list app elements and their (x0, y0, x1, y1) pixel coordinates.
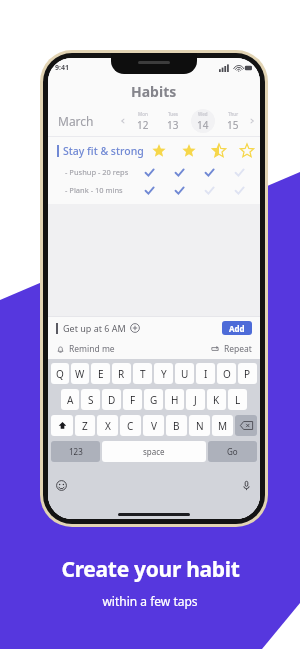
button[interactable]: Tues (158, 108, 188, 134)
staticText: W (75, 367, 85, 381)
button[interactable]: D (102, 389, 121, 410)
staticText: F (130, 393, 136, 407)
staticText: V (151, 419, 157, 433)
staticText: C (127, 419, 134, 433)
button[interactable]: Toggle completion (164, 182, 194, 198)
staticText: 123 (69, 446, 83, 457)
staticText: space (143, 446, 165, 457)
button[interactable]: R (112, 363, 131, 384)
staticText: H (171, 393, 179, 407)
button[interactable]: Y (154, 363, 173, 384)
button[interactable]: I (196, 363, 215, 384)
staticText: 12 (137, 118, 149, 132)
button[interactable]: Toggle completion (224, 182, 254, 198)
staticText: Add (229, 323, 245, 334)
button[interactable]: F (123, 389, 142, 410)
staticText: 9:41 (55, 63, 69, 73)
button[interactable]: K (207, 389, 226, 410)
button[interactable]: E (91, 363, 110, 384)
button[interactable]: B (166, 415, 187, 436)
staticText: M (218, 419, 228, 433)
staticText: K (213, 393, 220, 407)
staticText: P (244, 367, 251, 381)
staticText: - Plank - 10 mins (65, 185, 123, 195)
button[interactable]: Rating star (144, 141, 174, 161)
button[interactable]: Repeat (210, 343, 252, 355)
button[interactable]: Q (51, 363, 69, 384)
button[interactable]: Next week (248, 117, 256, 125)
button[interactable]: Rating star (234, 141, 260, 161)
button[interactable]: C (120, 415, 141, 436)
button[interactable]: Previous week (119, 117, 127, 125)
button[interactable]: space (102, 441, 206, 462)
button[interactable]: V (143, 415, 164, 436)
staticText: J (194, 393, 197, 407)
button[interactable]: Shift (51, 415, 73, 436)
staticText: T (140, 367, 146, 381)
staticText: Go (227, 446, 238, 457)
staticText: Q (56, 367, 64, 381)
button[interactable]: P (238, 363, 257, 384)
staticText: - Pushup - 20 reps (65, 167, 129, 177)
staticText: Get up at 6 AM (63, 322, 126, 334)
button[interactable]: - Plank - 10 mins (48, 182, 260, 198)
button[interactable]: L (228, 389, 247, 410)
button[interactable]: N (189, 415, 210, 436)
button[interactable]: X (97, 415, 118, 436)
staticText: Repeat (224, 343, 252, 355)
button[interactable]: Toggle completion (164, 164, 194, 180)
button[interactable]: Wed (188, 108, 218, 134)
staticText: R (118, 367, 125, 381)
button[interactable]: Thur (218, 108, 248, 134)
staticText: B (173, 419, 180, 433)
staticText: Tues (168, 111, 178, 117)
staticText: Thur (228, 111, 239, 117)
button[interactable]: M (212, 415, 233, 436)
staticText: Create your habit (61, 555, 240, 584)
button[interactable]: Toggle completion (134, 164, 164, 180)
staticText: 13 (167, 118, 179, 132)
staticText: E (98, 367, 104, 381)
staticText: N (196, 419, 204, 433)
button[interactable]: Z (75, 415, 95, 436)
button[interactable]: T (133, 363, 152, 384)
staticText: Remind me (69, 343, 115, 355)
staticText: Y (161, 367, 167, 381)
button[interactable]: Toggle completion (134, 182, 164, 198)
button[interactable]: Emoji (55, 479, 68, 492)
button[interactable]: Toggle completion (194, 164, 224, 180)
button[interactable]: 123 (51, 441, 100, 462)
button[interactable]: Stay fit & strong (48, 141, 260, 161)
button[interactable]: H (165, 389, 184, 410)
staticText: Habits (131, 82, 177, 101)
staticText: within a few taps (102, 593, 198, 609)
staticText: O (223, 367, 231, 381)
staticText: G (150, 393, 158, 407)
button[interactable]: Add detail (130, 323, 140, 333)
button[interactable]: S (81, 389, 100, 410)
button[interactable]: W (71, 363, 89, 384)
button[interactable]: J (186, 389, 205, 410)
staticText: L (235, 393, 241, 407)
button[interactable]: Rating star (204, 141, 234, 161)
button[interactable]: Toggle completion (224, 164, 254, 180)
staticText: 15 (227, 118, 239, 132)
staticText: March (58, 113, 94, 129)
staticText: U (181, 367, 189, 381)
button[interactable]: Backspace (235, 415, 257, 436)
button[interactable]: G (144, 389, 163, 410)
button[interactable]: Rating star (174, 141, 204, 161)
button[interactable]: Toggle completion (194, 182, 224, 198)
button[interactable]: Add (222, 321, 252, 335)
staticText: I (204, 367, 208, 381)
button[interactable]: O (217, 363, 236, 384)
button[interactable]: Go (208, 441, 257, 462)
button[interactable]: A (61, 389, 79, 410)
button[interactable]: Voice input (240, 479, 253, 492)
button[interactable]: Mon (128, 108, 158, 134)
button[interactable]: U (175, 363, 194, 384)
staticText: Wed (198, 111, 208, 117)
button[interactable]: - Pushup - 20 reps (48, 164, 260, 180)
staticText: X (105, 419, 111, 433)
button[interactable]: Remind me (56, 343, 115, 355)
